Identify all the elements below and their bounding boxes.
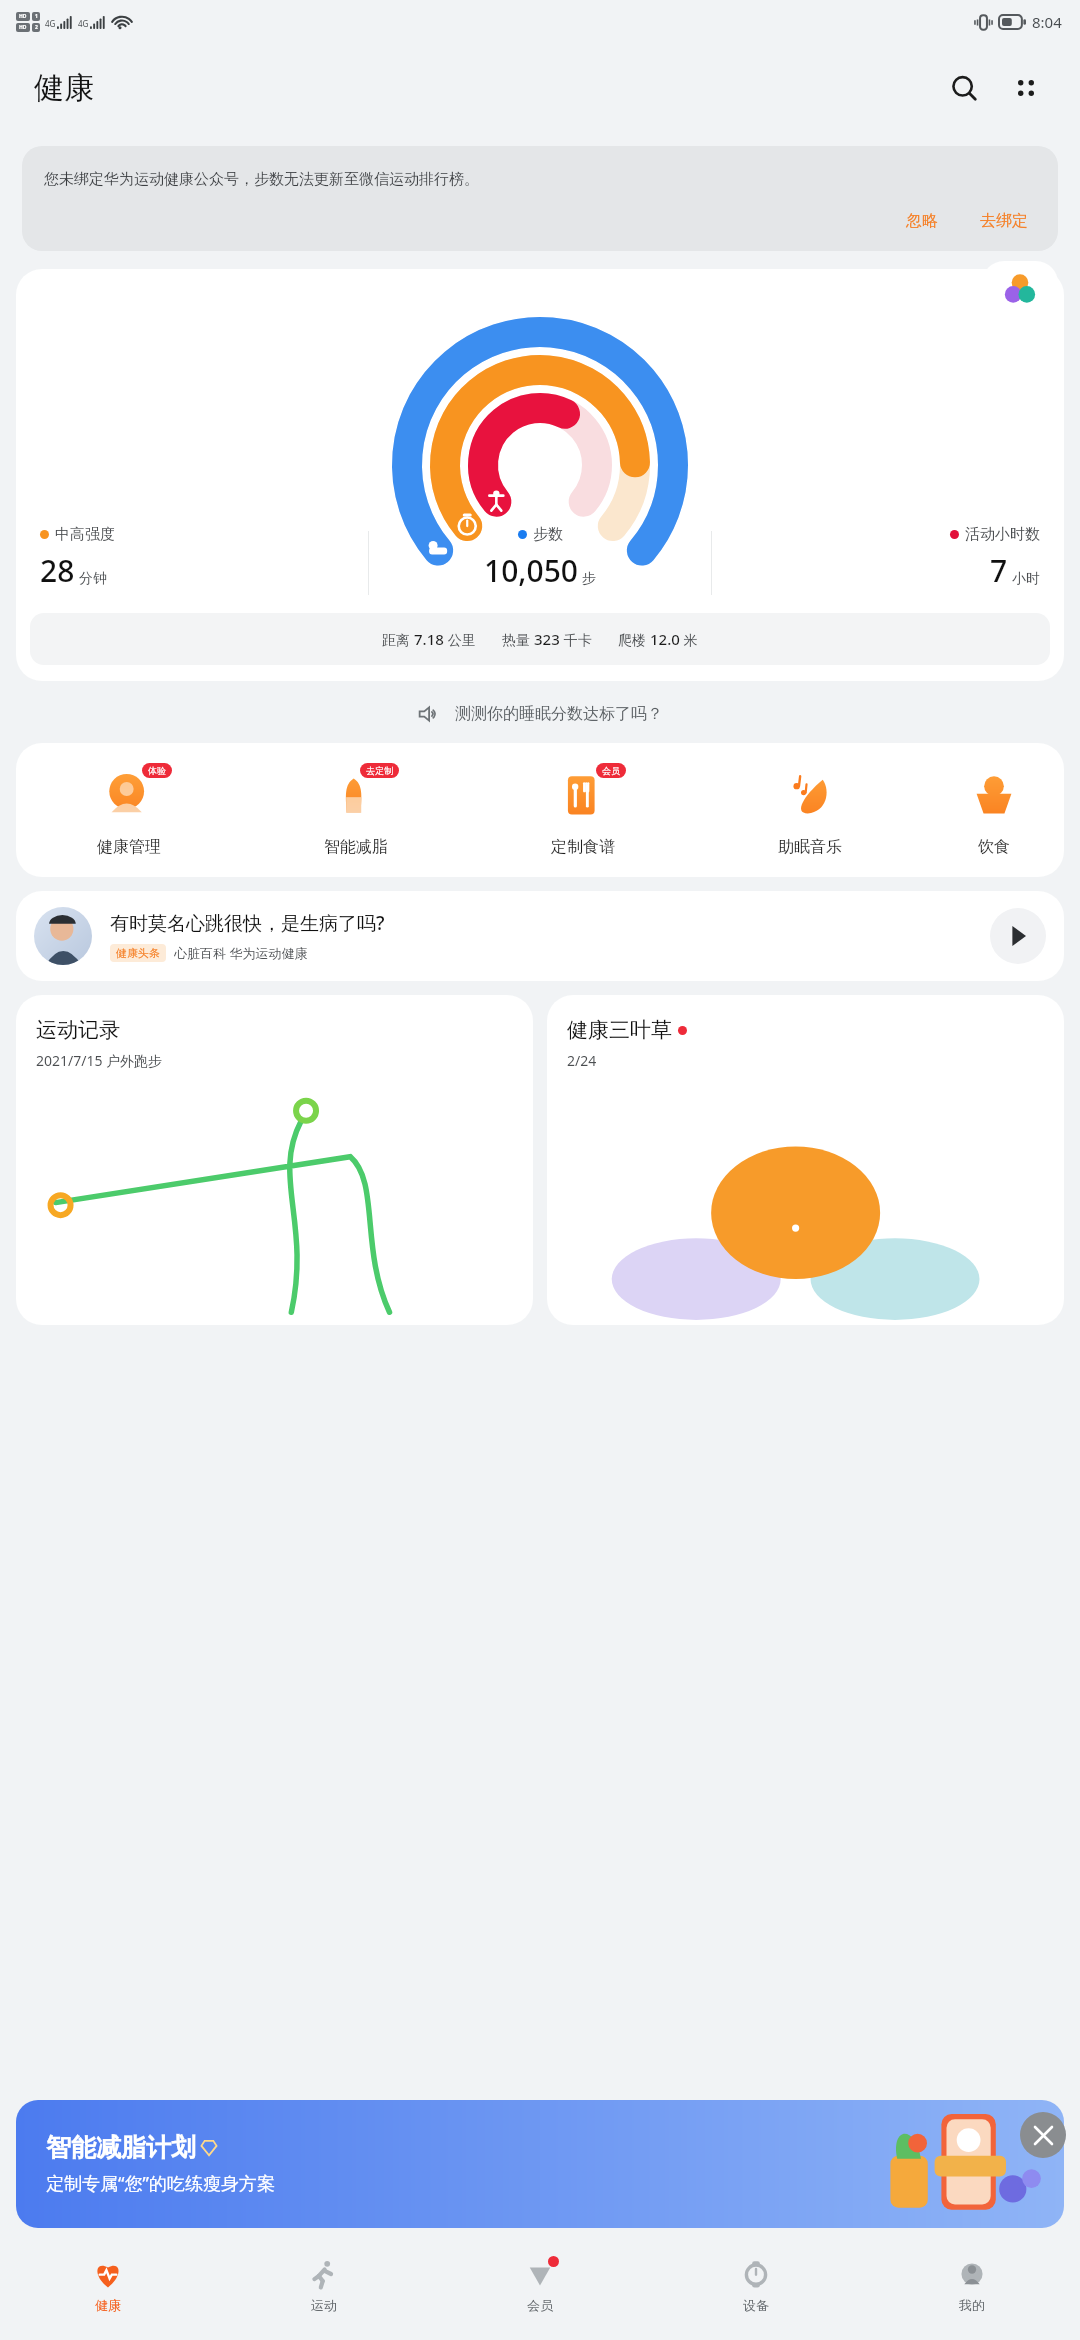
staticText: 智能减脂计划	[46, 2132, 196, 2163]
staticText: 饮食	[978, 837, 1010, 857]
button[interactable]: 健康	[0, 2230, 216, 2340]
button[interactable]: 运动	[216, 2230, 432, 2340]
staticText: 距离	[382, 630, 414, 649]
staticText: 定制专属“您”的吃练瘦身方案	[46, 2171, 275, 2196]
button[interactable]: Close	[1020, 2112, 1066, 2158]
staticText: 7.18	[414, 629, 444, 649]
button[interactable]: 助眠音乐	[696, 765, 923, 857]
staticText: 您未绑定华为运动健康公众号，步数无法更新至微信运动排行榜。	[44, 170, 479, 189]
staticText: 1	[35, 13, 38, 20]
staticText: 爬楼	[618, 630, 650, 649]
button[interactable]: 设备	[648, 2230, 864, 2340]
staticText: 有时莫名心跳很快，是生病了吗?	[110, 910, 385, 936]
staticText: 心脏百科 华为运动健康	[174, 944, 308, 962]
staticText: 健康	[95, 2297, 121, 2313]
staticText: 会员	[527, 2297, 553, 2313]
staticText: 步数	[533, 525, 563, 544]
staticText: 2021/7/15 户外跑步	[36, 1051, 163, 1070]
staticText: 运动	[311, 2297, 337, 2313]
staticText: 7	[990, 550, 1008, 591]
button[interactable]: Search	[940, 64, 988, 112]
button[interactable]: 我的	[864, 2230, 1080, 2340]
staticText: 步	[582, 570, 596, 588]
button[interactable]: Health clover	[982, 261, 1058, 317]
button[interactable]: More options	[1002, 64, 1050, 112]
staticText: 中高强度	[55, 525, 115, 544]
staticText: 323	[534, 629, 560, 649]
staticText: 千卡	[560, 630, 592, 649]
button[interactable]: 您未绑定华为运动健康公众号，步数无法更新至微信运动排行榜。	[22, 146, 1058, 251]
staticText: 公里	[444, 630, 476, 649]
staticText: 助眠音乐	[778, 837, 842, 857]
button[interactable]: 步数	[369, 525, 711, 591]
staticText: 热量	[502, 630, 534, 649]
staticText: 智能减脂	[324, 837, 388, 857]
staticText: 我的	[959, 2297, 985, 2313]
button[interactable]: 测测你的睡眠分数达标了吗？	[0, 697, 1080, 731]
staticText: 4G	[78, 18, 89, 29]
staticText: 去定制	[366, 765, 393, 776]
staticText: 10,050	[484, 550, 578, 591]
staticText: 设备	[743, 2297, 769, 2313]
button[interactable]: 活动小时数	[712, 525, 1054, 591]
staticText: 健康	[34, 69, 94, 107]
button[interactable]: 去定制	[242, 765, 469, 857]
staticText: 分钟	[79, 570, 107, 588]
button[interactable]: 中高强度	[26, 525, 368, 591]
button[interactable]: 中高强度	[16, 269, 1064, 681]
button[interactable]: 健康三叶草	[547, 995, 1064, 1325]
staticText: 会员	[602, 765, 620, 776]
button[interactable]: 体验	[16, 765, 242, 857]
staticText: 健康三叶草	[567, 1017, 672, 1043]
staticText: 测测你的睡眠分数达标了吗？	[455, 704, 663, 724]
staticText: 健康头条	[116, 946, 160, 960]
staticText: 2/24	[567, 1051, 597, 1070]
button[interactable]: 去绑定	[972, 207, 1036, 235]
staticText: 健康管理	[97, 837, 161, 857]
staticText: HD	[19, 24, 27, 31]
button[interactable]: 有时莫名心跳很快，是生病了吗?	[16, 891, 1064, 981]
staticText: 12.0	[650, 629, 680, 649]
button[interactable]: Play	[990, 908, 1046, 964]
button[interactable]: 智能减脂计划	[16, 2100, 1064, 2228]
staticText: 运动记录	[36, 1017, 120, 1043]
staticText: 体验	[148, 765, 166, 776]
staticText: 定制食谱	[551, 837, 615, 857]
staticText: 28	[40, 550, 75, 591]
staticText: 活动小时数	[965, 525, 1040, 544]
staticText: 小时	[1012, 570, 1040, 588]
staticText: HD	[19, 13, 27, 20]
button[interactable]: 运动记录	[16, 995, 533, 1325]
button[interactable]: 会员	[432, 2230, 648, 2340]
button[interactable]: 距离	[30, 613, 1050, 665]
button[interactable]: 会员	[469, 765, 696, 857]
staticText: 4G	[45, 18, 56, 29]
button[interactable]: 忽略	[898, 207, 946, 235]
staticText: 8:04	[1032, 12, 1062, 32]
staticText: 2	[35, 24, 38, 31]
staticText: 米	[680, 630, 698, 649]
button[interactable]: 饮食	[923, 765, 1064, 857]
